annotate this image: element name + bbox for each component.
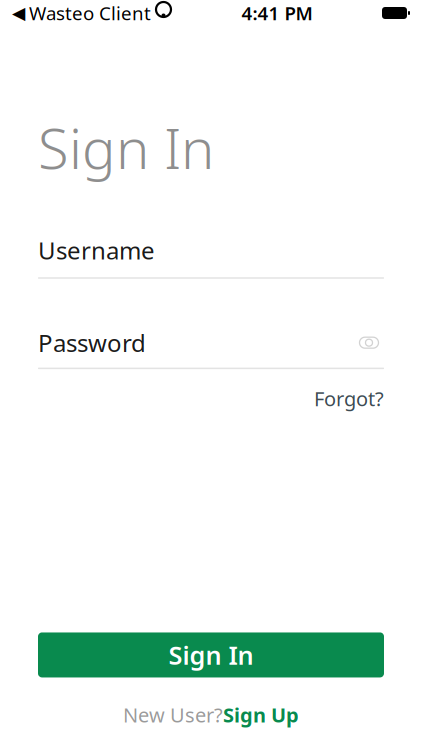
staticText: Username [38, 234, 155, 266]
staticText: ◀ [12, 3, 25, 23]
button[interactable]: Sign In [38, 632, 384, 677]
staticText: Wasteo Client [29, 1, 151, 25]
staticText: Sign In [38, 110, 214, 184]
staticText: Forgot? [314, 385, 384, 412]
staticText: 4:41 PM [241, 1, 312, 25]
staticText: Password [38, 327, 146, 359]
staticText: Sign In [168, 638, 253, 672]
button[interactable]: Show password [354, 331, 384, 355]
button[interactable]: Forgot? [314, 381, 384, 416]
staticText: Sign Up [223, 701, 299, 728]
button[interactable]: Sign Up [223, 701, 299, 728]
staticText: New User? [123, 701, 223, 728]
